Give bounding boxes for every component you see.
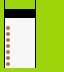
button[interactable]	[5, 61, 35, 67]
button[interactable]	[5, 49, 35, 55]
button[interactable]	[5, 43, 35, 49]
button[interactable]	[5, 37, 35, 43]
button[interactable]	[5, 25, 35, 31]
button[interactable]	[5, 31, 35, 37]
button[interactable]	[5, 55, 35, 61]
